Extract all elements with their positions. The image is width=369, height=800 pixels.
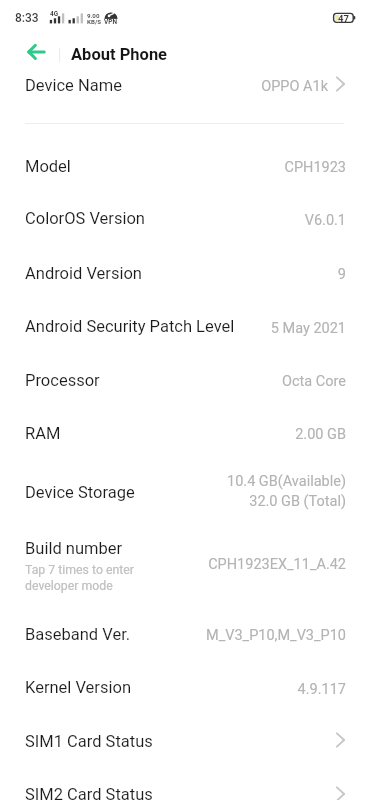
button[interactable] (0, 191, 369, 244)
staticText: Model (25, 157, 71, 176)
staticText: 4G (50, 10, 59, 18)
staticText: Processor (25, 371, 100, 390)
staticText: Build number (25, 539, 123, 558)
button[interactable] (0, 602, 369, 655)
button[interactable] (0, 66, 369, 122)
staticText: VPN (104, 18, 118, 26)
staticText: 5 May 2021 (0, 320, 346, 337)
staticText: Tap 7 times to enter developer mode (25, 563, 134, 593)
staticText: 9 (0, 266, 346, 283)
staticText: Device Storage (25, 483, 135, 502)
button[interactable]: SIM2 Card Status (331, 778, 353, 800)
staticText: OPPO A1k (0, 78, 328, 95)
staticText: 8:33 (15, 11, 39, 25)
staticText: 2.00 GB (0, 426, 346, 443)
staticText: 10.4 GB(Available) 32.0 GB (Total) (0, 473, 346, 510)
staticText: RAM (25, 424, 61, 443)
staticText: CPH1923EX_11_A.42 (0, 556, 346, 573)
staticText: 4.9.117 (0, 681, 346, 698)
staticText: M_V3_P10,M_V3_P10 (0, 627, 346, 644)
staticText: 9.00 KB/S (87, 12, 101, 25)
staticText: Android Version (25, 264, 142, 283)
button[interactable] (0, 136, 369, 189)
staticText: Kernel Version (25, 678, 131, 697)
staticText: SIM2 Card Status (25, 785, 153, 800)
button[interactable] (0, 767, 369, 800)
button[interactable]: Device Name (331, 68, 353, 100)
staticText: V6.0.1 (0, 212, 346, 229)
button[interactable] (0, 300, 369, 353)
button[interactable] (0, 458, 369, 522)
staticText: SIM1 Card Status (25, 732, 153, 751)
button[interactable] (0, 353, 369, 406)
staticText: 47 (338, 13, 349, 24)
staticText: CPH1923 (0, 159, 346, 176)
button[interactable] (0, 660, 369, 713)
staticText: Baseband Ver. (25, 625, 131, 644)
button[interactable]: Back (16, 36, 52, 68)
staticText: Android Security Patch Level (25, 317, 235, 336)
button[interactable] (0, 406, 369, 459)
button[interactable] (0, 246, 369, 299)
staticText: Device Name (25, 76, 122, 95)
button[interactable] (0, 714, 369, 767)
button[interactable]: SIM1 Card Status (331, 724, 353, 756)
staticText: Octa Core (0, 373, 346, 390)
button[interactable] (0, 522, 369, 596)
staticText: ColorOS Version (25, 209, 145, 228)
staticText: About Phone (71, 45, 168, 64)
